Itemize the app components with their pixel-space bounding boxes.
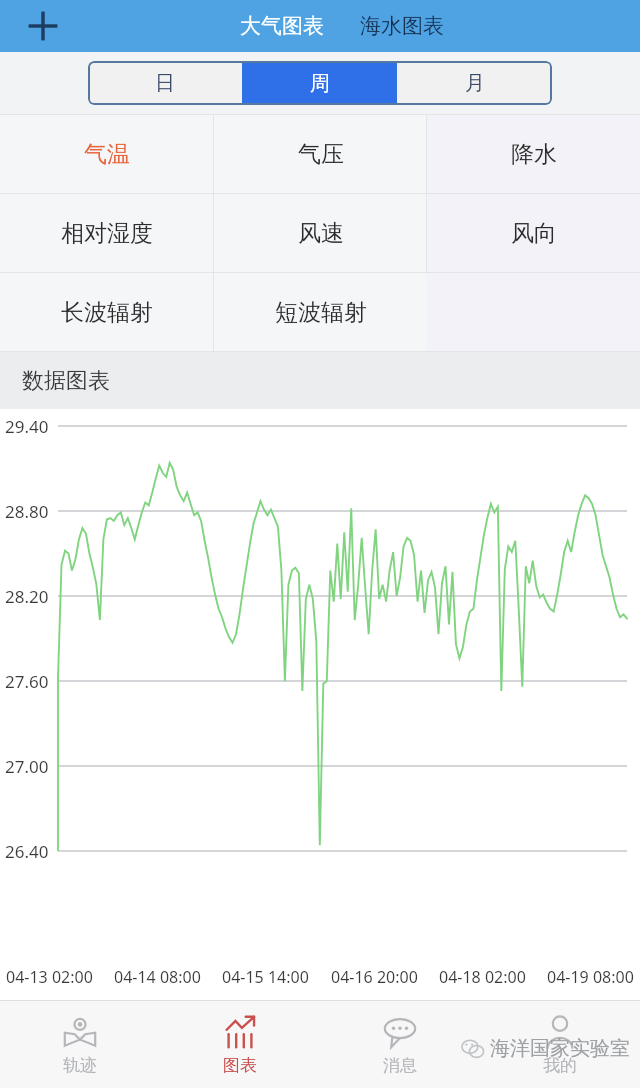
button[interactable]: 风向 [427,194,640,272]
button[interactable]: 我的 [480,1001,640,1088]
button[interactable]: 短波辐射 [214,273,427,351]
staticText: 日 [155,71,175,96]
staticText: 轨迹 [63,1055,97,1076]
button[interactable]: 气压 [214,115,427,193]
staticText: 海水图表 [360,13,444,39]
button[interactable]: 月 [397,61,552,105]
button[interactable]: 长波辐射 [0,273,214,351]
staticText: 长波辐射 [61,298,153,327]
staticText: 28.20 [5,585,49,608]
button[interactable]: 气温 [0,115,214,193]
staticText: 气压 [298,140,344,169]
staticText: 28.80 [5,500,49,523]
staticText: 海洋国家实验室 [490,1036,630,1061]
staticText: 26.40 [5,840,49,863]
button[interactable]: 降水 [427,115,640,193]
button[interactable]: 相对湿度 [0,194,214,272]
staticText: 图表 [223,1055,257,1076]
staticText: 27.60 [5,670,49,693]
staticText: 短波辐射 [275,298,367,327]
staticText: 我的 [543,1055,577,1076]
button[interactable]: 海水图表 [352,5,452,47]
staticText: 04-18 02:00 [439,966,526,988]
button[interactable]: 风速 [214,194,427,272]
staticText: 04-16 20:00 [331,966,418,988]
staticText: 消息 [383,1055,417,1076]
staticText: 04-14 08:00 [114,966,201,988]
staticText: 04-15 14:00 [222,966,309,988]
staticText: 04-19 08:00 [547,966,634,988]
button[interactable]: Add [20,3,66,49]
staticText: 04-13 02:00 [6,966,93,988]
staticText: 27.00 [5,755,49,778]
staticText: 降水 [511,140,557,169]
staticText: 气温 [84,140,130,169]
button[interactable]: 周 [242,61,397,105]
staticText: 风速 [298,219,344,248]
staticText: 大气图表 [240,13,324,39]
staticText: 相对湿度 [61,219,153,248]
staticText: 风向 [511,219,557,248]
button[interactable]: 图表 [160,1001,320,1088]
button[interactable]: 大气图表 [232,5,332,47]
button[interactable]: 日 [88,61,242,105]
staticText: 月 [465,71,485,96]
staticText: 数据图表 [22,367,110,395]
staticText: 29.40 [5,415,49,438]
button[interactable]: 轨迹 [0,1001,160,1088]
staticText: 周 [310,71,330,96]
button[interactable]: 消息 [320,1001,480,1088]
